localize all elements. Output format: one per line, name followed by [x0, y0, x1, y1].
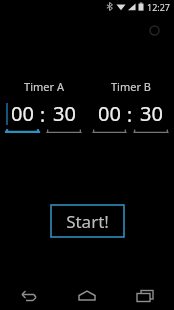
button[interactable]: 00: [93, 100, 126, 133]
staticText: 30: [140, 100, 163, 127]
staticText: :: [40, 102, 46, 128]
button[interactable]: Start!: [51, 205, 124, 237]
button[interactable]: 30: [134, 100, 168, 133]
staticText: :: [127, 102, 133, 128]
button[interactable]: 30: [47, 100, 81, 133]
button[interactable]: 00: [6, 100, 39, 133]
staticText: 30: [53, 100, 76, 127]
staticText: Timer A: [24, 79, 64, 94]
staticText: 12:27: [147, 1, 171, 13]
button[interactable]: Recent apps: [116, 282, 174, 310]
staticText: 00: [98, 100, 121, 127]
staticText: 00: [11, 100, 34, 127]
staticText: Timer B: [111, 79, 151, 94]
button[interactable]: Back: [0, 282, 58, 310]
staticText: Start!: [66, 210, 109, 233]
button[interactable]: Home: [58, 282, 116, 310]
